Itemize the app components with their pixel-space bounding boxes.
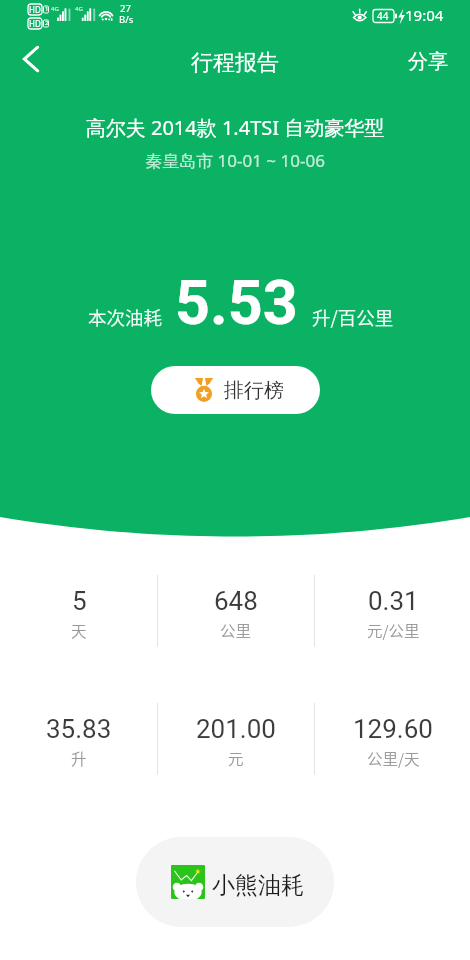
staticText: 5.53 [175,267,298,338]
staticText: 4G [51,5,59,13]
staticText: HD [29,18,41,29]
staticText: 秦皇岛市 10-01 ~ 10-06 [0,149,470,172]
staticText: B/s [119,13,134,26]
staticText: 2 [45,19,49,27]
staticText: 本次油耗 [88,304,163,331]
button[interactable]: Back [6,34,56,84]
staticText: 元/公里 [367,619,420,641]
staticText: 129.60 [353,714,433,744]
staticText: HD [29,4,41,15]
button[interactable]: 小熊油耗 [136,837,334,927]
button[interactable]: 分享 [386,39,470,84]
staticText: 公里 [220,619,252,641]
staticText: 天 [71,619,87,641]
staticText: 升 [71,747,87,769]
staticText: 小熊油耗 [212,871,304,900]
staticText: 高尔夫 2014款 1.4TSI 自动豪华型 [0,114,470,141]
staticText: 27 [120,2,131,15]
staticText: 1 [45,5,49,13]
staticText: 4G [75,5,83,13]
staticText: 648 [214,586,258,616]
staticText: 升/百公里 [312,304,394,331]
staticText: 35.83 [46,714,112,744]
staticText: 5 [72,586,87,616]
staticText: 元 [228,747,244,769]
staticText: 0.31 [368,586,419,616]
staticText: 公里/天 [367,747,420,769]
staticText: 排行榜 [224,378,284,403]
staticText: 44 [377,9,389,23]
staticText: 19:04 [405,5,444,25]
staticText: 行程报告 [191,49,279,77]
button[interactable]: 排行榜 [151,366,320,414]
staticText: 201.00 [196,714,276,744]
staticText: 分享 [408,49,448,74]
